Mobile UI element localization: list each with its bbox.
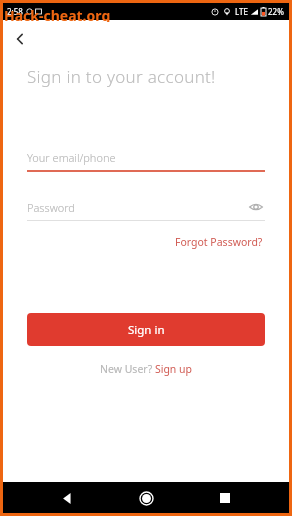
button[interactable]: Back bbox=[9, 28, 31, 50]
button[interactable]: Back bbox=[52, 483, 82, 513]
staticText: New User? Sign up bbox=[100, 362, 193, 376]
button[interactable]: Forgot Password? bbox=[173, 233, 265, 251]
staticText: Sign in to your account! bbox=[27, 65, 216, 88]
button[interactable]: New User? Sign up bbox=[98, 360, 195, 378]
button[interactable]: Password bbox=[27, 198, 265, 221]
staticText: LTE bbox=[235, 6, 248, 17]
staticText: 2:58 bbox=[7, 6, 23, 17]
staticText: 22% bbox=[268, 6, 284, 17]
button[interactable]: Show password bbox=[247, 198, 265, 216]
button[interactable]: Recents bbox=[210, 483, 240, 513]
staticText: Hack-cheat.org bbox=[4, 6, 111, 22]
staticText: Forgot Password? bbox=[175, 235, 263, 249]
button[interactable]: Your email/phone bbox=[27, 150, 265, 172]
staticText: Your email/phone bbox=[27, 150, 116, 165]
staticText: Sign in bbox=[128, 322, 165, 338]
button[interactable]: Sign in bbox=[27, 313, 265, 346]
staticText: Password bbox=[27, 200, 247, 215]
button[interactable]: Home bbox=[131, 483, 161, 513]
